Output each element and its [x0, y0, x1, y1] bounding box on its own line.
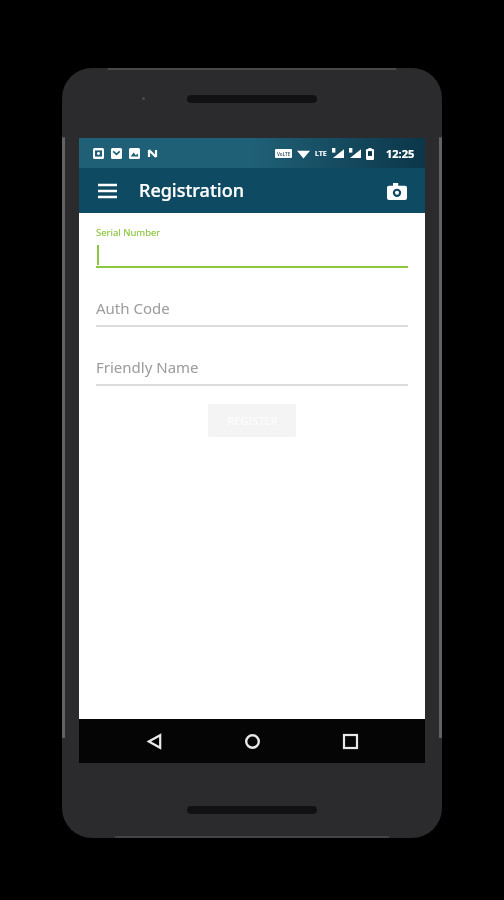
button[interactable]: Home	[229, 719, 275, 763]
staticText: Registration	[139, 178, 244, 203]
staticText: LTE	[315, 149, 327, 159]
button[interactable]: Serial Number	[96, 226, 408, 268]
button[interactable]: Recent apps	[327, 719, 373, 763]
button[interactable]: Open navigation menu	[87, 171, 127, 211]
button[interactable]: Friendly Name	[96, 354, 408, 386]
staticText: Serial Number	[96, 226, 161, 239]
button[interactable]: Auth Code	[96, 295, 408, 327]
staticText: 12:25	[386, 146, 415, 161]
button[interactable]: Scan with camera	[377, 171, 417, 211]
staticText: Auth Code	[96, 298, 170, 318]
staticText: VoLTE	[277, 151, 291, 157]
button[interactable]: Back	[131, 719, 177, 763]
staticText: Friendly Name	[96, 357, 199, 377]
